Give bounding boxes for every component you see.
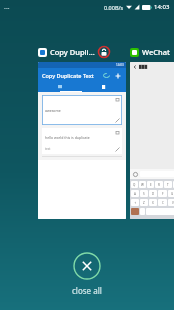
button[interactable]: Z	[140, 199, 148, 206]
staticText: awesome	[45, 108, 61, 113]
staticText: Copy Dupli...	[50, 47, 95, 57]
button[interactable]: Copy Dupli...	[38, 45, 126, 59]
button[interactable]: awesome	[42, 95, 122, 125]
staticText: A	[134, 192, 136, 196]
button[interactable]: F	[158, 190, 167, 197]
button[interactable]: Q	[131, 181, 138, 188]
button[interactable]: W	[139, 181, 146, 188]
staticText: ███	[139, 65, 148, 69]
staticText: Z	[143, 201, 145, 205]
button[interactable]	[82, 83, 126, 91]
staticText: 14:03	[116, 63, 124, 67]
staticText: T	[167, 183, 169, 187]
button[interactable]	[131, 208, 139, 215]
staticText: C	[162, 201, 164, 205]
button[interactable]	[140, 208, 145, 215]
staticText: Copy Duplicate Text	[42, 72, 94, 79]
staticText: ...	[4, 2, 10, 12]
staticText: E	[150, 183, 152, 187]
button[interactable]: WeChat	[130, 45, 174, 59]
staticText: V	[172, 201, 174, 205]
button[interactable]: V	[168, 199, 174, 206]
button[interactable]: C	[158, 199, 167, 206]
button[interactable]: hello world this is duplicate	[42, 128, 122, 154]
button[interactable]: Lock app	[98, 46, 110, 58]
staticText: ↑	[134, 201, 137, 204]
button[interactable]: ↑	[131, 199, 139, 206]
button[interactable]: 14:03	[38, 62, 126, 219]
button[interactable]: G	[168, 190, 174, 197]
button[interactable]: Y	[173, 181, 174, 188]
staticText: 14:03	[154, 3, 170, 11]
button[interactable]: R	[155, 181, 163, 188]
staticText: D	[152, 192, 155, 196]
staticText: G	[171, 192, 174, 196]
staticText: WeChat	[142, 47, 170, 57]
staticText: X	[152, 201, 154, 205]
staticText: hello world this is duplicate	[45, 135, 90, 140]
staticText: W	[141, 183, 144, 187]
staticText: F	[162, 192, 164, 196]
staticText: text	[45, 147, 51, 151]
button[interactable]: S	[140, 190, 148, 197]
button[interactable]: E	[147, 181, 154, 188]
button[interactable]: ███	[130, 62, 174, 219]
button[interactable]	[38, 83, 82, 91]
staticText: S	[143, 192, 145, 196]
button[interactable]: T	[164, 181, 172, 188]
staticText: Q	[133, 183, 136, 187]
button[interactable]: X	[149, 199, 157, 206]
staticText: 0.00B/s	[104, 4, 124, 11]
button[interactable]: close all	[72, 252, 102, 296]
staticText: close all	[72, 285, 102, 296]
button[interactable]: A	[131, 190, 139, 197]
staticText: R	[158, 183, 160, 187]
button[interactable]: D	[149, 190, 157, 197]
